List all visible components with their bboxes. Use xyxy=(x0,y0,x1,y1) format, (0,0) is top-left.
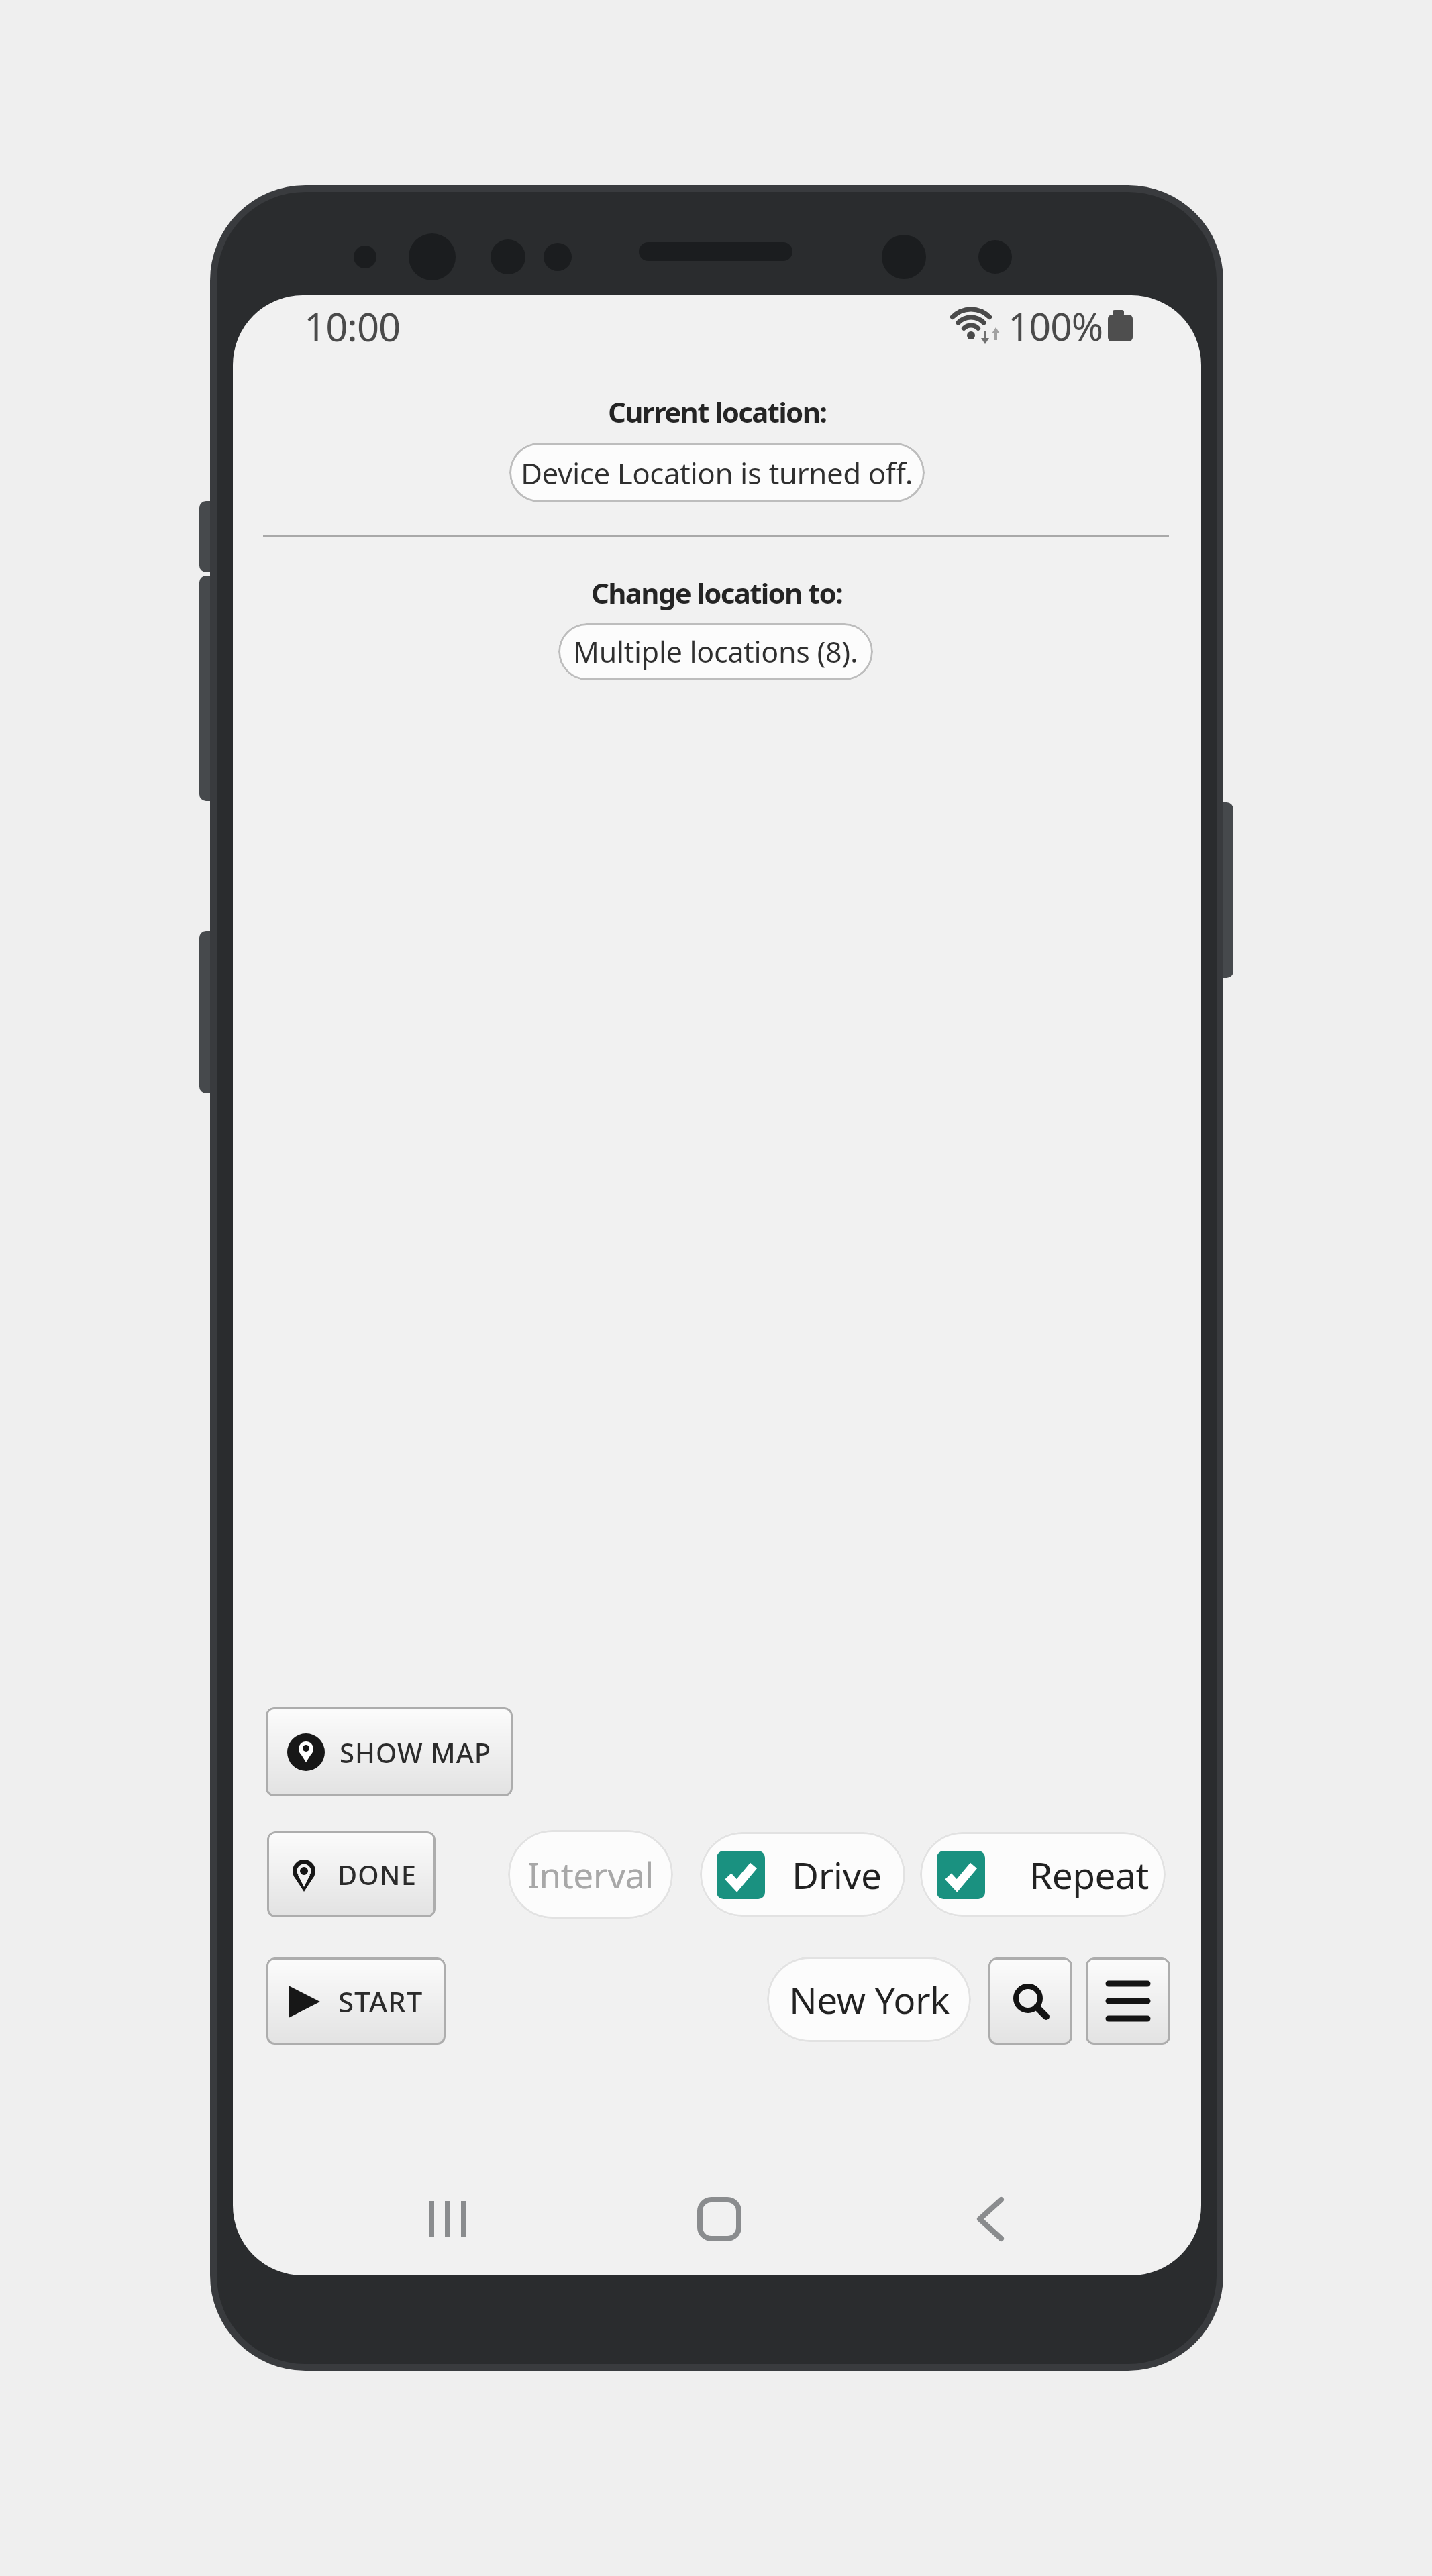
staticText: SHOW MAP xyxy=(340,1734,492,1770)
button[interactable]: Repeat xyxy=(920,1832,1166,1917)
button[interactable]: START xyxy=(266,1957,446,2045)
staticText: Change location to: xyxy=(591,574,843,612)
staticText: Drive xyxy=(792,1849,882,1900)
staticText: Repeat xyxy=(1029,1849,1149,1900)
button[interactable]: Drive xyxy=(700,1832,905,1917)
button[interactable] xyxy=(411,2186,485,2253)
button[interactable] xyxy=(1086,1957,1170,2045)
staticText: Device Location is turned off. xyxy=(521,453,913,493)
staticText: START xyxy=(338,1982,423,2021)
button[interactable]: SHOW MAP xyxy=(266,1707,513,1796)
button[interactable]: Interval xyxy=(508,1830,673,1919)
staticText: Current location: xyxy=(608,392,827,431)
button[interactable]: DONE xyxy=(267,1831,436,1917)
button[interactable] xyxy=(961,2186,1035,2253)
button[interactable]: New York xyxy=(767,1957,971,2042)
staticText: Multiple locations (8). xyxy=(573,632,858,672)
staticText: DONE xyxy=(338,1856,417,1892)
button[interactable] xyxy=(988,1957,1072,2045)
staticText: 100% xyxy=(1008,300,1103,352)
staticText: New York xyxy=(789,1974,950,2025)
button[interactable]: Device Location is turned off. xyxy=(509,443,925,502)
staticText: Interval xyxy=(527,1850,654,1898)
button[interactable] xyxy=(682,2186,756,2253)
staticText: 10:00 xyxy=(304,300,401,353)
button[interactable]: Multiple locations (8). xyxy=(558,623,873,680)
